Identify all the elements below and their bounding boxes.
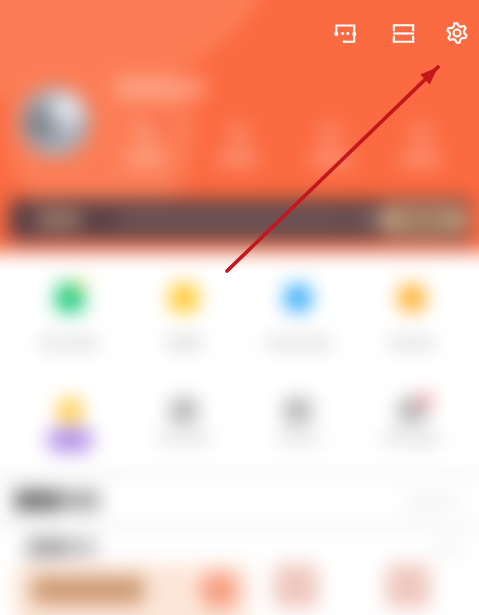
button[interactable]: History xyxy=(241,398,355,445)
button[interactable] xyxy=(9,199,470,241)
button[interactable]: Messages xyxy=(322,10,368,56)
button[interactable]: Split screen xyxy=(380,10,426,56)
button[interactable] xyxy=(386,564,430,608)
button[interactable]: Check in xyxy=(13,398,127,451)
button[interactable]: Favorites xyxy=(127,398,241,445)
button[interactable]: Services xyxy=(355,284,469,350)
button[interactable]: Messages xyxy=(355,398,469,445)
button[interactable]: Community xyxy=(241,284,355,350)
button[interactable] xyxy=(274,564,318,608)
staticText: History xyxy=(278,429,319,445)
button[interactable]: Member benefit xyxy=(391,123,451,175)
button[interactable]: Profile photo xyxy=(20,87,90,157)
button[interactable] xyxy=(14,564,250,615)
button[interactable] xyxy=(378,206,468,234)
staticText: Favorites xyxy=(158,429,210,445)
button[interactable]: Member benefit xyxy=(208,123,268,175)
button[interactable]: Member benefit xyxy=(300,123,360,175)
staticText: Check in xyxy=(50,433,90,447)
button[interactable]: My orders xyxy=(13,284,127,350)
button[interactable]: Member benefit xyxy=(115,123,175,175)
button[interactable]: Settings xyxy=(434,10,479,56)
button[interactable]: Wallet xyxy=(127,284,241,350)
staticText: Messages xyxy=(384,429,440,445)
